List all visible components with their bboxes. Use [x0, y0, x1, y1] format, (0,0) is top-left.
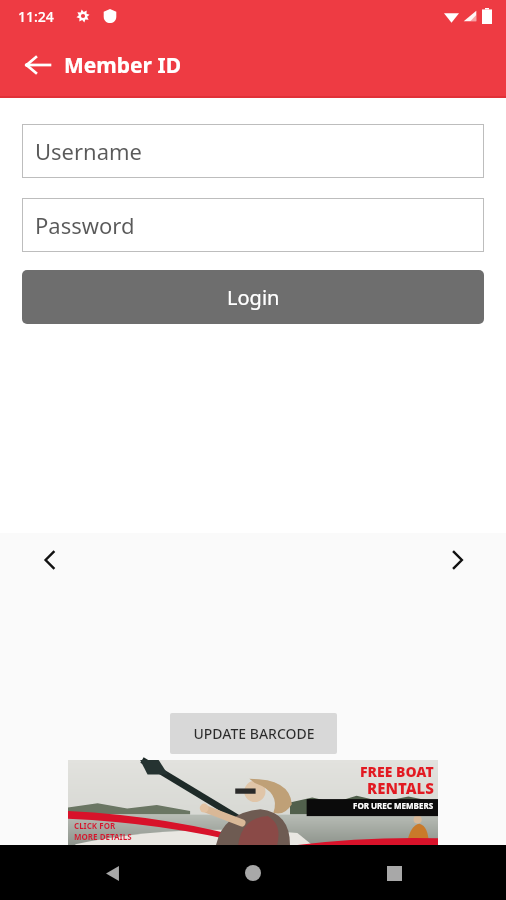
staticText: Member ID: [64, 51, 182, 80]
button[interactable]: Previous: [28, 538, 72, 582]
button[interactable]: Home: [231, 851, 275, 895]
button[interactable]: UPDATE BARCODE: [170, 713, 337, 754]
staticText: FREE BOAT: [360, 762, 434, 781]
button[interactable]: Login: [22, 270, 484, 324]
button[interactable]: Password: [22, 198, 484, 252]
staticText: UPDATE BARCODE: [193, 724, 315, 743]
staticText: RENTALS: [367, 778, 434, 798]
button[interactable]: Username: [22, 124, 484, 178]
button[interactable]: Free boat rentals advertisement: [68, 760, 438, 845]
button[interactable]: Recent apps: [372, 851, 416, 895]
staticText: CLICK FOR: [74, 820, 116, 831]
staticText: Username: [35, 136, 143, 166]
button[interactable]: Back: [14, 41, 62, 89]
button[interactable]: Back: [90, 851, 134, 895]
button[interactable]: Next: [435, 538, 479, 582]
staticText: 11:24: [18, 7, 54, 26]
staticText: Login: [227, 284, 280, 311]
staticText: FOR UREC MEMBERS: [353, 800, 434, 811]
staticText: Password: [35, 210, 135, 240]
staticText: MORE DETAILS: [74, 831, 132, 842]
